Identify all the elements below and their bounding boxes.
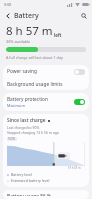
staticText: 8 h 57 m — [6, 23, 53, 39]
button[interactable]: Off — [74, 69, 85, 75]
staticText: Battery level — [11, 172, 32, 177]
button[interactable]: Search — [78, 10, 90, 22]
staticText: Battery protection — [7, 96, 48, 103]
staticText: 36% available — [6, 39, 31, 44]
button[interactable]: Background usage limits — [3, 78, 89, 90]
button[interactable]: Power saving — [3, 65, 89, 78]
staticText: 100% — [8, 137, 16, 141]
staticText: Background usage limits — [7, 81, 63, 88]
button[interactable]: Battery usage 56 % — [3, 190, 89, 199]
staticText: 9:08 — [4, 2, 12, 7]
staticText: Battery — [14, 11, 39, 21]
staticText: Stopped charging 13 h 56 m ago — [7, 130, 59, 135]
button[interactable]: Back — [2, 10, 14, 22]
staticText: left — [54, 32, 62, 38]
staticText: Power saving — [7, 68, 37, 75]
staticText: Battery usage 56 % — [7, 193, 51, 196]
staticText: Estimated battery level — [11, 178, 50, 183]
button[interactable]: Battery protection — [3, 93, 89, 111]
staticText: A full charge will last about 1 day — [6, 55, 63, 60]
staticText: Since last charge — [7, 117, 46, 124]
staticText: Maximum — [7, 103, 26, 108]
staticText: Last charged to 90% — [7, 125, 40, 130]
button[interactable]: On — [74, 99, 85, 105]
staticText: 19 h 07 m — [68, 166, 81, 170]
button[interactable]: Since last charge — [3, 114, 89, 187]
